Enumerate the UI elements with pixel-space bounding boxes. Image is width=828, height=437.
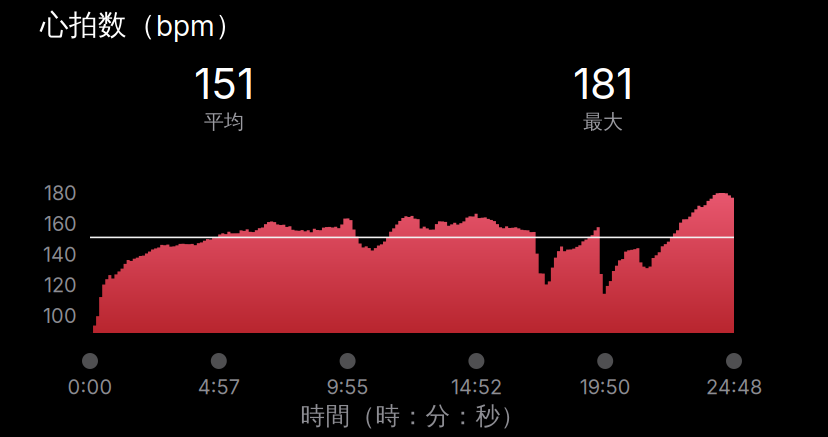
staticText: 140: [43, 242, 77, 266]
staticText: 0:00: [67, 375, 112, 399]
staticText: 時間（時：分：秒）: [300, 400, 525, 431]
staticText: 4:57: [198, 375, 240, 399]
staticText: 19:50: [580, 375, 631, 399]
staticText: 120: [44, 273, 77, 297]
staticText: 180: [44, 181, 77, 205]
staticText: 181: [573, 58, 633, 109]
staticText: 100: [43, 304, 77, 328]
staticText: 心拍数（bpm）: [40, 7, 244, 43]
staticText: 151: [194, 58, 254, 109]
staticText: 9:55: [327, 375, 369, 399]
staticText: 平均: [204, 109, 244, 134]
staticText: 14:52: [451, 375, 502, 399]
button[interactable]: 心拍数グラフ: [0, 0, 644, 140]
button[interactable]: 151: [0, 0, 260, 90]
button[interactable]: 181: [0, 0, 260, 90]
staticText: 160: [44, 212, 77, 236]
staticText: 24:48: [706, 375, 762, 399]
staticText: 最大: [583, 109, 623, 134]
